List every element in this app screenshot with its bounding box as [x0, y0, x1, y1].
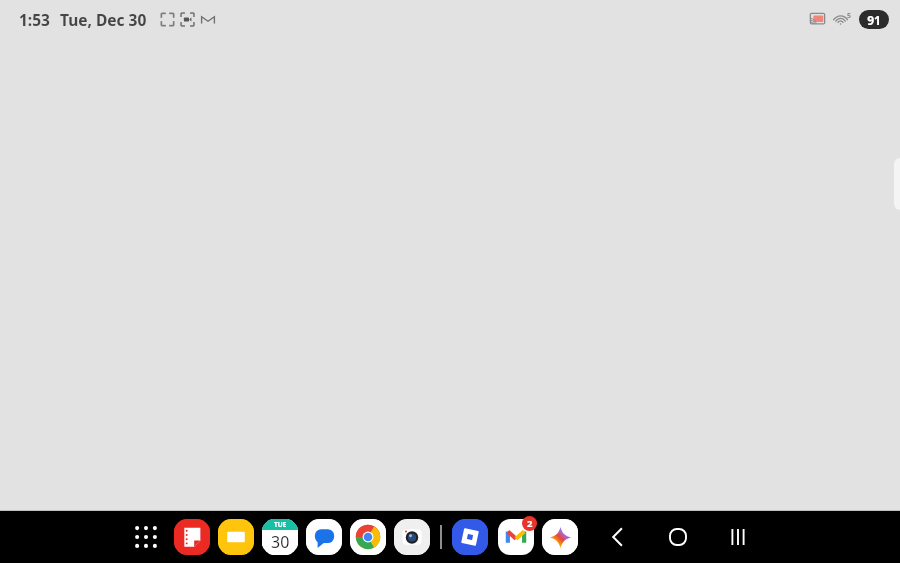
staticText: Tue, Dec 30	[60, 9, 147, 30]
button[interactable]: Recent apps	[712, 511, 764, 563]
button[interactable]: Back	[592, 511, 644, 563]
button[interactable]: Chrome	[348, 517, 388, 557]
button[interactable]: Apps	[126, 517, 166, 557]
button[interactable]: Messages	[304, 517, 344, 557]
button[interactable]: Home	[652, 511, 704, 563]
staticText: 2	[527, 517, 533, 530]
staticText: 1:53	[19, 9, 50, 30]
button[interactable]: Roblox	[450, 517, 490, 557]
staticText: TUE	[274, 520, 287, 529]
button[interactable]: Gemini	[540, 517, 580, 557]
staticText: 30	[271, 531, 290, 553]
button[interactable]: Calendar	[260, 517, 300, 557]
button[interactable]: Files	[216, 517, 256, 557]
staticText: 91	[867, 12, 881, 28]
button[interactable]: Camera	[392, 517, 432, 557]
staticText: 5	[847, 11, 852, 21]
button[interactable]: Keep Notes	[172, 517, 212, 557]
button[interactable]: Gmail, 2 unread	[494, 515, 538, 559]
